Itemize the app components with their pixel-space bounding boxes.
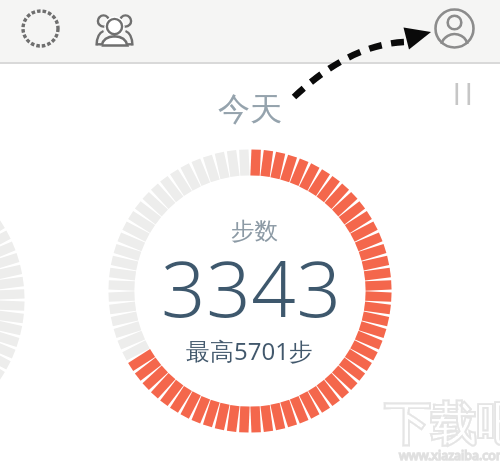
button[interactable] [20,8,61,49]
button[interactable] [444,78,480,112]
staticText: 3343 [161,234,342,340]
staticText: 下载吧 [384,396,500,454]
button[interactable] [92,8,138,50]
staticText: 最高5701步 [186,334,313,367]
button[interactable] [433,7,476,50]
staticText: 步数 [231,216,278,246]
staticText: 今天 [218,89,282,129]
staticText: www.xiazaiba.com [399,447,500,464]
